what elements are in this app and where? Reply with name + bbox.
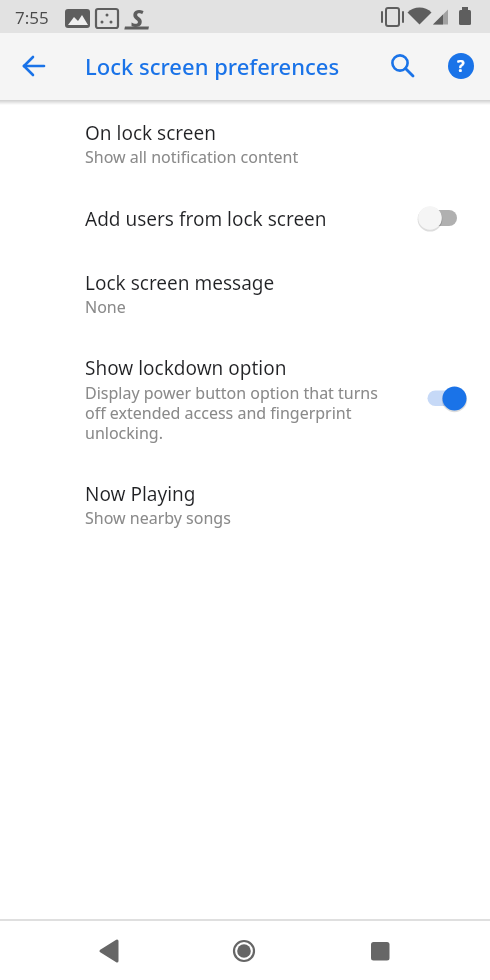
staticText: off extended access and fingerprint	[85, 402, 352, 424]
button[interactable]	[0, 180, 490, 256]
staticText: Add users from lock screen	[85, 206, 327, 232]
button[interactable]	[0, 105, 490, 180]
button[interactable]	[358, 929, 402, 973]
staticText: On lock screen	[85, 120, 216, 146]
button[interactable]	[88, 929, 132, 973]
staticText: Now Playing	[85, 481, 196, 507]
staticText: Lock screen preferences	[85, 51, 340, 81]
button[interactable]	[0, 462, 490, 540]
button[interactable]	[222, 929, 266, 973]
button[interactable]	[0, 340, 490, 458]
button[interactable]	[12, 44, 56, 88]
staticText: Display power button option that turns	[85, 382, 378, 404]
staticText: Show all notification content	[85, 146, 299, 168]
staticText: Show lockdown option	[85, 355, 287, 381]
staticText: S	[131, 2, 144, 28]
button[interactable]	[381, 44, 425, 88]
staticText: Lock screen message	[85, 270, 275, 296]
staticText: Show nearby songs	[85, 507, 231, 529]
staticText: unlocking.	[85, 422, 163, 444]
staticText: 7:55	[15, 6, 49, 29]
staticText: None	[85, 296, 126, 318]
button[interactable]	[0, 256, 490, 332]
button[interactable]: ?	[448, 53, 474, 79]
staticText: ?	[457, 55, 465, 77]
